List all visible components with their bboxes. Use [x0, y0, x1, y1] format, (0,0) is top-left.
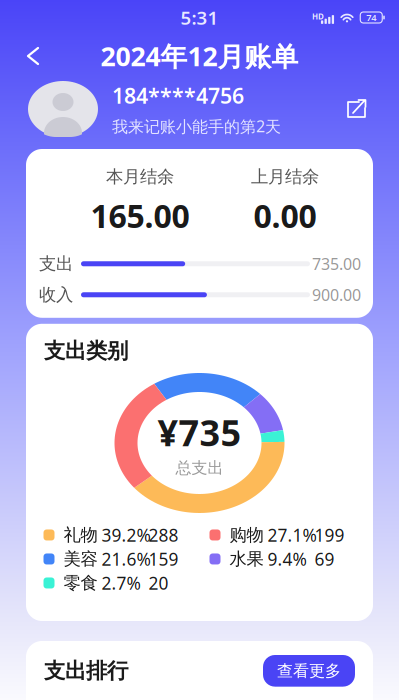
staticText: 900.00: [312, 284, 361, 305]
staticText: 支出排行: [44, 658, 128, 684]
staticText: 5:31: [180, 5, 218, 30]
staticText: 查看更多: [277, 661, 341, 681]
button[interactable]: Share: [339, 91, 375, 127]
staticText: 美容: [63, 548, 97, 570]
staticText: 2024年12月账单: [100, 38, 298, 74]
staticText: 零食: [63, 572, 97, 594]
staticText: 199: [314, 523, 344, 546]
staticText: 69: [314, 547, 334, 570]
staticText: 74: [366, 11, 376, 24]
staticText: 上月结余: [251, 166, 319, 187]
staticText: 39.2%: [101, 523, 150, 546]
staticText: 支出: [39, 253, 73, 274]
staticText: 735.00: [312, 253, 361, 274]
staticText: 165.00: [90, 194, 189, 237]
staticText: 0.00: [253, 194, 316, 237]
button[interactable]: Back: [12, 35, 54, 77]
staticText: 支出类别: [44, 338, 128, 364]
staticText: 本月结余: [106, 166, 174, 187]
button[interactable]: 查看更多: [263, 655, 355, 687]
staticText: 184****4756: [112, 81, 244, 109]
staticText: ¥735: [157, 408, 241, 456]
staticText: 21.6%: [101, 547, 150, 570]
staticText: HD: [312, 11, 324, 22]
staticText: 288: [148, 523, 178, 546]
staticText: 2.7%: [101, 571, 140, 594]
staticText: 9.4%: [267, 547, 306, 570]
staticText: 水果: [229, 548, 263, 570]
staticText: 27.1%: [267, 523, 316, 546]
staticText: 总支出: [175, 458, 223, 478]
staticText: 礼物: [63, 524, 97, 546]
staticText: 159: [148, 547, 178, 570]
staticText: 购物: [229, 524, 263, 546]
staticText: 20: [148, 571, 168, 594]
staticText: 我来记账小能手的第2天: [112, 115, 281, 137]
staticText: 收入: [39, 284, 73, 305]
